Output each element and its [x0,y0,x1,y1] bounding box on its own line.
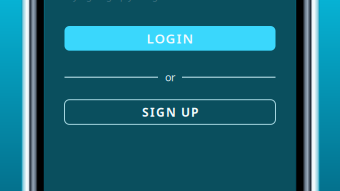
button[interactable]: S I G N U P [64,100,275,124]
staticText: L O G I N [146,29,193,47]
staticText: S I G N U P [142,104,198,120]
button[interactable]: L O G I N [64,26,275,51]
staticText: or [165,70,175,84]
staticText: By signing up you agree to our Terms of … [67,0,273,2]
